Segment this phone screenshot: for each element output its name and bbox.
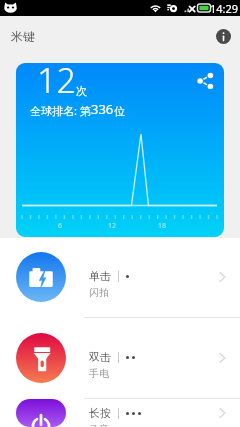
staticText: 手电 xyxy=(89,367,109,380)
staticText: 闪拍 xyxy=(89,286,109,299)
staticText: 单击 xyxy=(89,269,111,283)
staticText: 18 xyxy=(158,221,167,231)
button[interactable]: Share xyxy=(192,68,218,94)
button[interactable]: 双击 xyxy=(0,318,240,398)
button[interactable]: 单击 xyxy=(0,237,240,317)
staticText: 336 xyxy=(91,100,114,118)
staticText: 双击 xyxy=(89,350,111,364)
staticText: 全球排名: 第 xyxy=(30,103,91,118)
staticText: 长按 xyxy=(89,406,111,420)
staticText: 次 xyxy=(76,84,87,98)
button[interactable]: Info xyxy=(212,25,234,47)
staticText: 位 xyxy=(114,104,125,118)
staticText: 米键 xyxy=(11,29,35,44)
staticText: 14:29 xyxy=(210,1,239,16)
button[interactable]: 长按 xyxy=(0,399,240,427)
staticText: 录音 xyxy=(89,423,109,427)
staticText: 6 xyxy=(58,221,63,231)
staticText: 12 xyxy=(37,63,76,103)
staticText: 12 xyxy=(108,221,117,231)
